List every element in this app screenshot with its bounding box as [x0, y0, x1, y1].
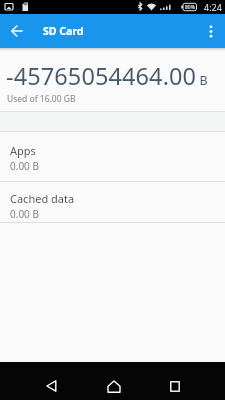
staticText: Apps [10, 143, 36, 158]
button[interactable] [99, 371, 129, 400]
staticText: SD Card [43, 24, 84, 38]
staticText: 0.00 B [10, 207, 39, 221]
staticText: -45765054464.00 B [6, 60, 208, 92]
button[interactable] [197, 17, 225, 45]
staticText: Used of 16.00 GB [7, 93, 76, 105]
button[interactable]: Apps [0, 132, 225, 181]
button[interactable] [160, 371, 190, 400]
staticText: 4:24 [204, 1, 222, 13]
staticText: 0.00 B [10, 159, 39, 173]
button[interactable] [5, 19, 29, 43]
button[interactable]: Cached data [0, 182, 225, 222]
button[interactable] [36, 371, 66, 400]
staticText: 80% [185, 4, 195, 11]
staticText: Cached data [10, 191, 75, 206]
